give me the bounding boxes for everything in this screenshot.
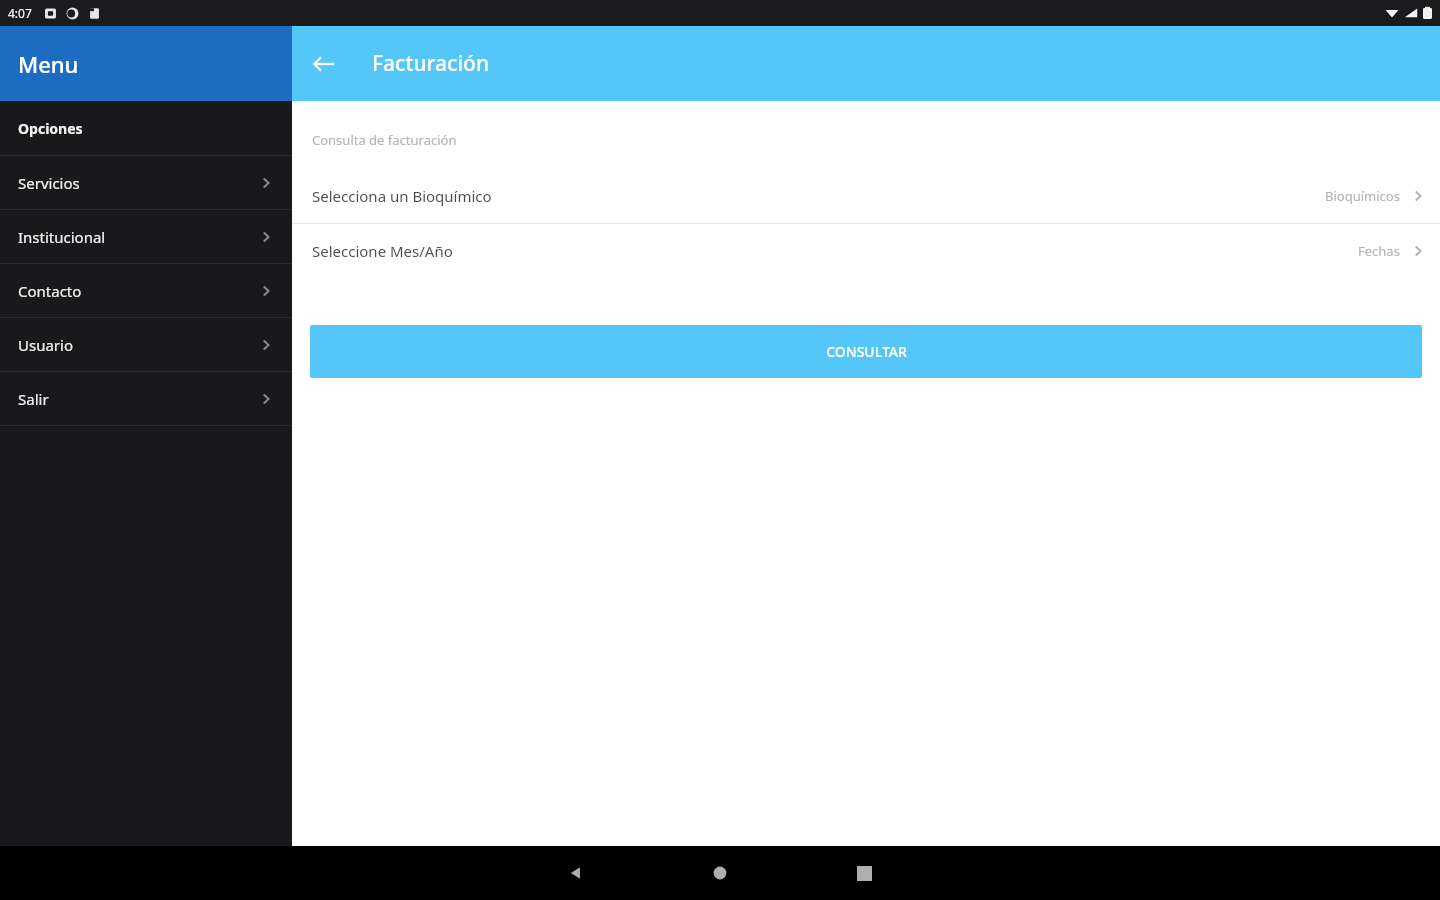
staticText: Servicios bbox=[18, 173, 80, 193]
staticText: Facturación bbox=[372, 49, 490, 78]
staticText: Selecciona un Bioquímico bbox=[312, 186, 492, 206]
staticText: Usuario bbox=[18, 335, 73, 355]
button[interactable]: Contacto bbox=[0, 264, 292, 317]
button[interactable]: Home bbox=[692, 846, 748, 900]
button[interactable]: Back bbox=[548, 846, 604, 900]
button[interactable]: Back bbox=[302, 42, 346, 86]
staticText: Seleccione Mes/Año bbox=[312, 241, 453, 261]
staticText: Salir bbox=[18, 389, 49, 409]
button[interactable]: Recent apps bbox=[836, 846, 892, 900]
staticText: Menu bbox=[18, 49, 79, 79]
staticText: Institucional bbox=[18, 227, 106, 247]
staticText: CONSULTAR bbox=[826, 342, 907, 361]
staticText: Bioquímicos bbox=[1325, 187, 1400, 205]
staticText: Contacto bbox=[18, 281, 82, 301]
button[interactable]: Usuario bbox=[0, 318, 292, 371]
staticText: Opciones bbox=[18, 119, 83, 138]
button[interactable]: Institucional bbox=[0, 210, 292, 263]
button[interactable]: CONSULTAR bbox=[310, 325, 1422, 378]
button[interactable]: Salir bbox=[0, 372, 292, 425]
staticText: Consulta de facturación bbox=[312, 131, 457, 149]
button[interactable]: Selecciona un Bioquímico bbox=[292, 169, 1440, 223]
button[interactable]: Seleccione Mes/Año bbox=[292, 224, 1440, 278]
button[interactable]: Servicios bbox=[0, 156, 292, 209]
staticText: 4:07 bbox=[8, 5, 32, 21]
staticText: Fechas bbox=[1358, 242, 1400, 260]
